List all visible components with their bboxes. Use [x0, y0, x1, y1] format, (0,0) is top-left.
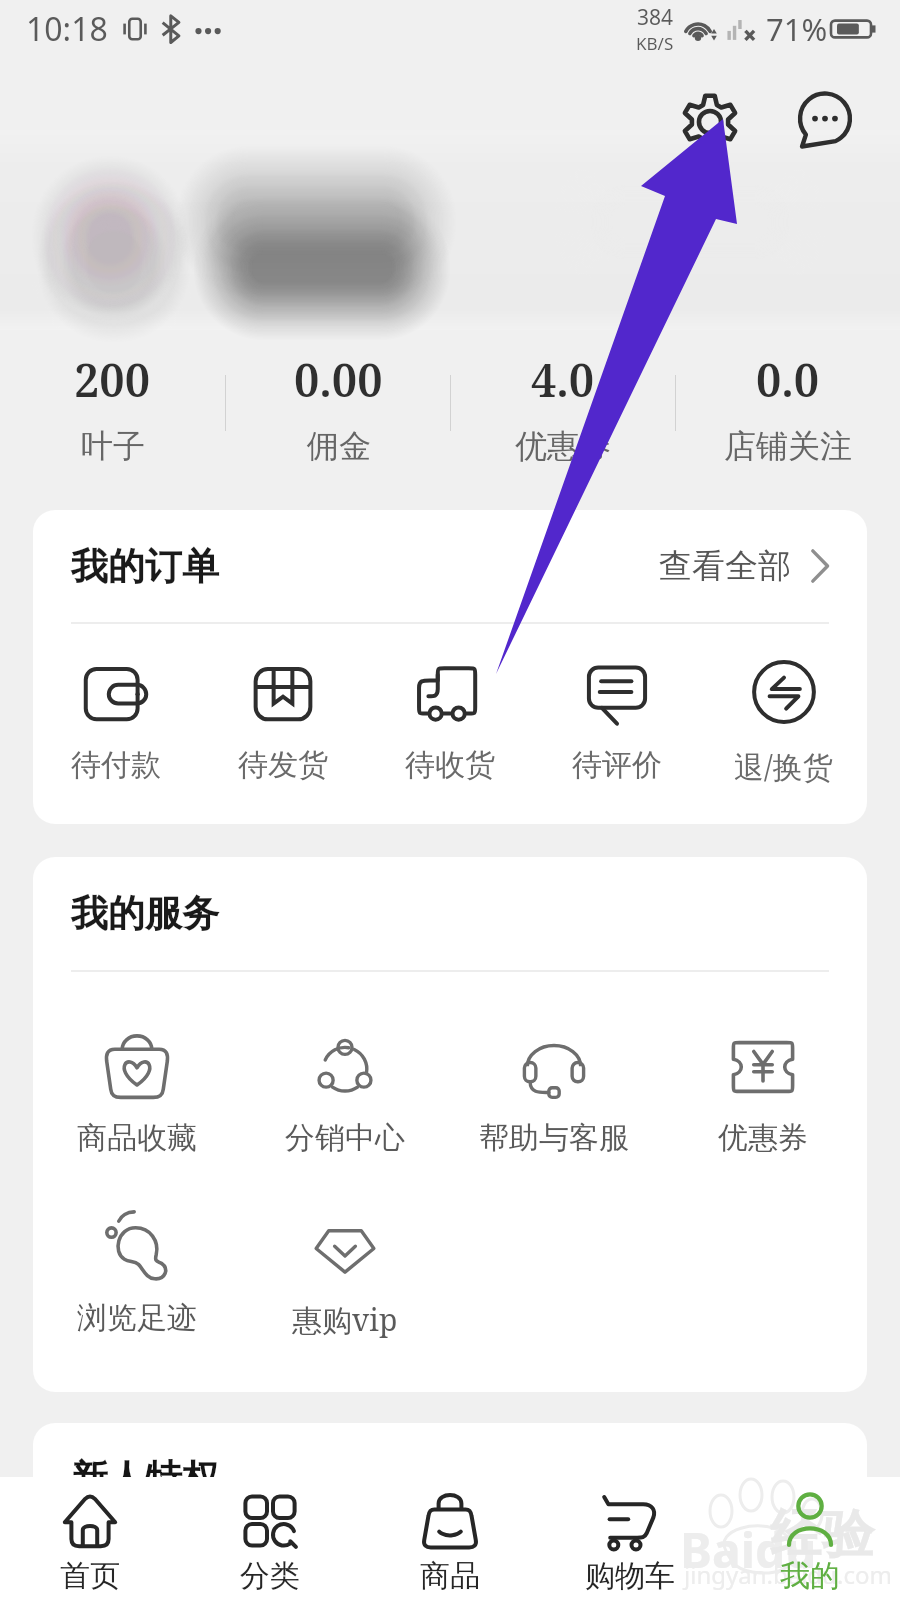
staticText: 200 [74, 349, 151, 410]
staticText: 我的服务 [71, 890, 219, 937]
staticText: 惠购vip [292, 1299, 398, 1340]
button[interactable]: 退/换货 [700, 656, 867, 806]
staticText: Baidu [680, 1517, 817, 1582]
staticText: KB/S [636, 32, 674, 55]
button[interactable]: 商品收藏 [33, 1030, 241, 1190]
button[interactable]: 我的 [720, 1477, 900, 1600]
staticText: 待付款 [71, 746, 161, 784]
button[interactable]: Settings [681, 93, 739, 151]
staticText: 查看全部 [659, 545, 791, 587]
staticText: 我的订单 [71, 543, 219, 590]
staticText: 0.00 [294, 349, 383, 410]
button[interactable]: 4.0 [451, 330, 675, 500]
button[interactable]: 待收货 [366, 656, 533, 806]
staticText: 10:18 [26, 7, 108, 51]
staticText: 购物车 [585, 1557, 675, 1595]
button[interactable]: 0.0 [676, 330, 900, 500]
staticText: 经验 [770, 1502, 874, 1568]
staticText: 帮助与客服 [479, 1119, 629, 1157]
staticText: 佣金 [307, 426, 371, 466]
staticText: 384 [637, 3, 674, 32]
staticText: 退/换货 [734, 746, 833, 787]
button[interactable]: 分销中心 [241, 1030, 449, 1190]
button[interactable]: 待发货 [199, 656, 366, 806]
staticText: 待收货 [405, 746, 495, 784]
staticText: 新人特权 [71, 1455, 219, 1502]
button[interactable]: 200 [0, 330, 225, 500]
staticText: 待评价 [572, 746, 662, 784]
staticText: 待发货 [238, 746, 328, 784]
staticText: 0.0 [756, 349, 820, 410]
staticText: 首页 [60, 1557, 120, 1595]
button[interactable]: 分类 [180, 1477, 360, 1600]
staticText: 分类 [240, 1557, 300, 1595]
button[interactable]: Messages [796, 93, 854, 151]
button[interactable]: 待付款 [33, 656, 199, 806]
button[interactable]: 惠购vip [241, 1210, 449, 1370]
staticText: jingyan.baidu.com [684, 1558, 892, 1591]
button[interactable]: 查看全部 [659, 545, 829, 587]
staticText: 分销中心 [285, 1119, 405, 1157]
staticText: 优惠券 [718, 1119, 808, 1157]
button[interactable]: 首页 [0, 1477, 180, 1600]
button[interactable]: 待评价 [533, 656, 700, 806]
button[interactable]: 购物车 [540, 1477, 720, 1600]
button[interactable]: 商品 [360, 1477, 540, 1600]
staticText: 商品 [420, 1557, 480, 1595]
button[interactable]: 优惠券 [658, 1030, 867, 1190]
staticText: 71% [766, 8, 828, 50]
staticText: 4.0 [531, 349, 595, 410]
staticText: 叶子 [81, 426, 145, 466]
button[interactable]: 浏览足迹 [33, 1210, 241, 1370]
button[interactable]: 0.00 [226, 330, 450, 500]
button[interactable]: 帮助与客服 [449, 1030, 658, 1190]
staticText: 商品收藏 [77, 1119, 197, 1157]
staticText: 店铺关注 [724, 426, 852, 466]
staticText: 浏览足迹 [77, 1299, 197, 1337]
staticText: 我的 [780, 1557, 840, 1595]
staticText: 优惠券 [515, 426, 611, 466]
